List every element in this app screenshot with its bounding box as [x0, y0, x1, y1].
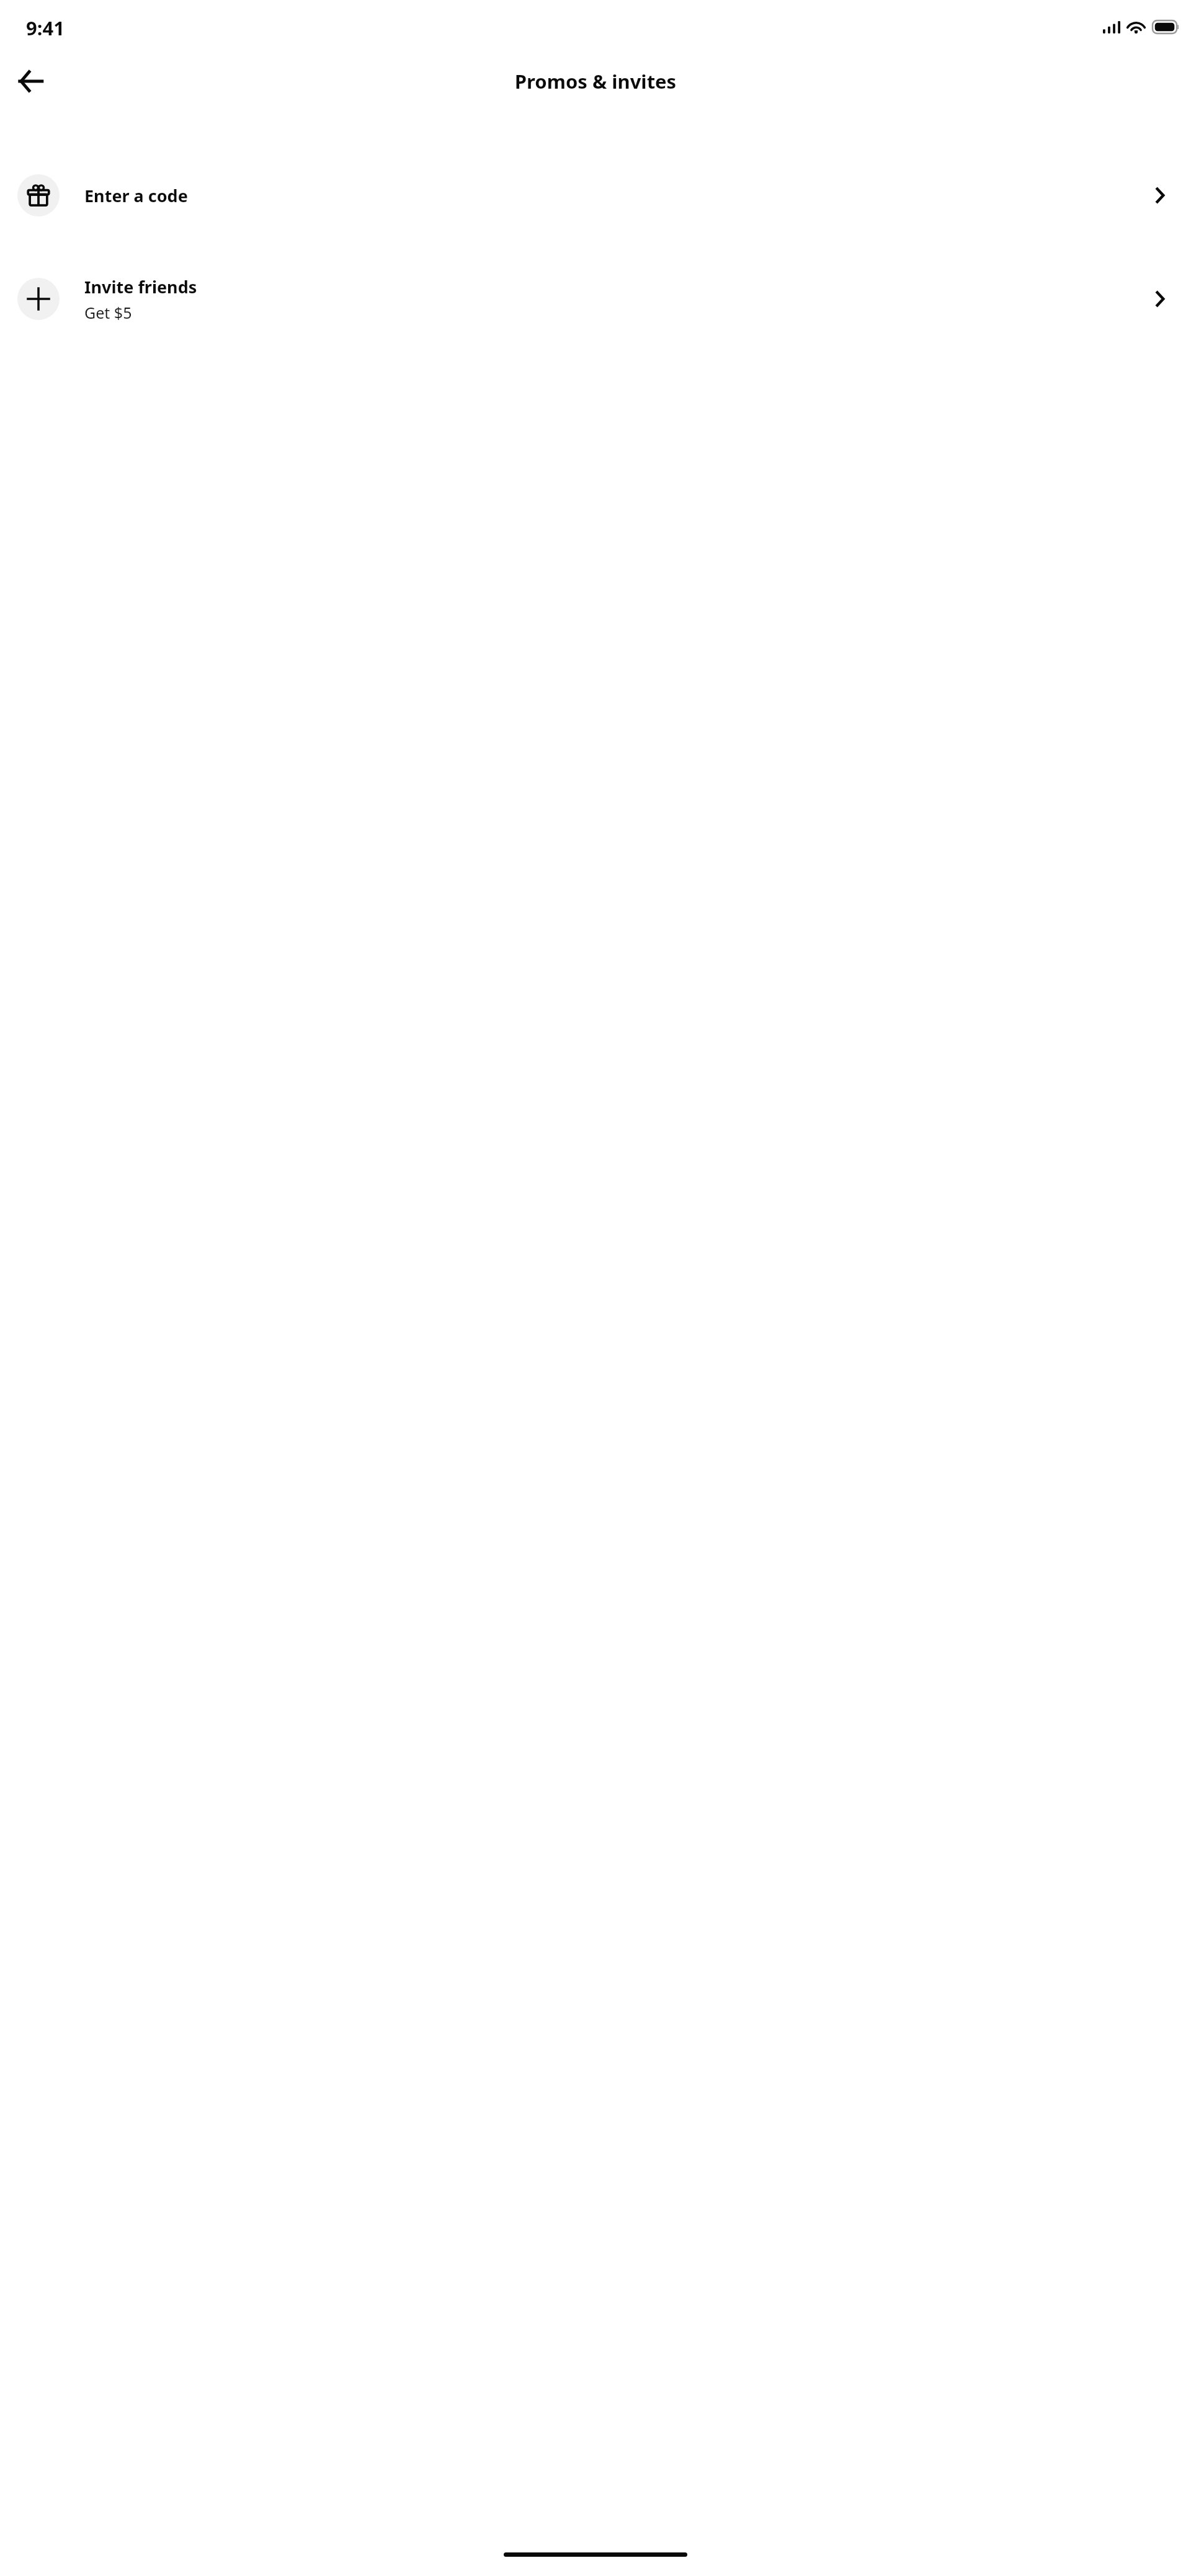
staticText: Promos & invites — [0, 68, 1191, 94]
button[interactable]: Invite friends — [0, 264, 1191, 334]
staticText: 9:41 — [26, 15, 65, 41]
button[interactable]: Back — [7, 58, 53, 104]
staticText: Enter a code — [84, 184, 188, 207]
button[interactable]: Enter a code — [0, 167, 1191, 223]
staticText: Get $5 — [84, 302, 132, 323]
staticText: Invite friends — [84, 275, 197, 298]
